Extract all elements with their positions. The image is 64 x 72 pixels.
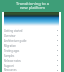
staticText: Release notes [4,59,21,63]
button[interactable]: Support [2,63,61,68]
button[interactable]: Architecture guide [2,38,61,43]
button[interactable]: Migration [2,43,61,48]
staticText: Samples [4,54,15,58]
staticText: Architecture guide [4,39,27,43]
staticText: Testing apps [4,49,20,53]
staticText: Support [4,64,14,68]
staticText: Migration [4,44,16,48]
button[interactable]: Testing apps [2,48,61,53]
button[interactable]: Release notes [2,58,61,63]
staticText: Getting started [4,29,23,33]
button[interactable]: Resources [2,68,61,72]
button[interactable]: Samples [2,53,61,58]
staticText: Resources [4,68,17,72]
staticText: Transitioning to a new platform [16,1,49,10]
button[interactable]: Getting started [2,28,61,33]
staticText: Overview [4,34,16,38]
button[interactable]: Overview [2,33,61,38]
